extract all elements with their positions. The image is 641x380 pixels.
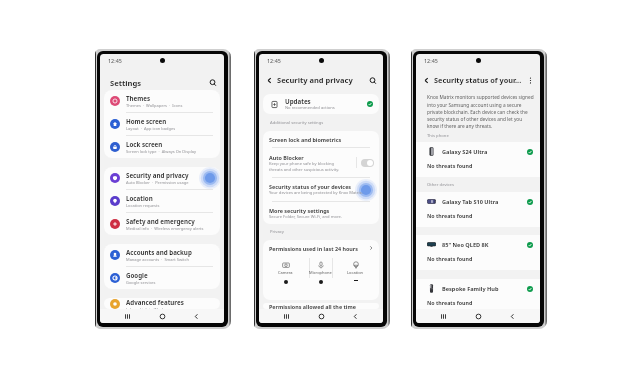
staticText: Settings [110, 78, 142, 88]
button[interactable]: Galaxy S24 Ultra [416, 142, 540, 177]
staticText: Other devices [427, 182, 454, 188]
button[interactable]: Back [421, 75, 432, 86]
button[interactable]: Home [315, 310, 328, 323]
button[interactable]: Permissions used in last 24 hours [263, 240, 379, 256]
staticText: Secure Folder, Secure Wi-Fi, and more. [269, 214, 342, 220]
staticText: Safety and emergency [126, 217, 195, 225]
button[interactable]: Microphone [309, 256, 332, 284]
staticText: Keep your phone safe by blocking threats… [269, 161, 340, 172]
staticText: Permissions used in last 24 hours [269, 245, 368, 252]
staticText: Medical info · Wireless emergency alerts [126, 226, 204, 231]
staticText: No recommended actions [285, 105, 335, 111]
staticText: More security settings [269, 207, 330, 214]
staticText: Security and privacy [126, 171, 189, 179]
button[interactable]: Screen lock and biometrics [263, 131, 379, 147]
button[interactable]: Search [367, 75, 378, 86]
staticText: Google [126, 271, 148, 279]
button[interactable]: More security settings [263, 202, 379, 224]
staticText: Advanced features [126, 298, 184, 306]
staticText: Your devices are being protected by Knox… [269, 190, 363, 196]
button[interactable]: Auto Blocker [263, 148, 379, 177]
staticText: Knox Matrix monitors supported devices s… [427, 94, 534, 129]
button[interactable]: Back [506, 310, 519, 323]
staticText: Auto Blocker · Permission usage [126, 180, 189, 185]
button[interactable]: Recents [121, 310, 134, 323]
button[interactable]: Galaxy Tab S10 Ultra [416, 192, 540, 227]
staticText: Location [347, 270, 364, 275]
button[interactable]: Recents [437, 310, 450, 323]
button[interactable]: Camera [278, 256, 293, 284]
staticText: Permissions allowed all the time [269, 303, 356, 309]
staticText: Galaxy S24 Ultra [442, 148, 527, 156]
button[interactable]: Permissions allowed all the time [263, 303, 379, 309]
staticText: No threats found [427, 255, 473, 262]
staticText: 85" Neo QLED 8K [442, 241, 527, 249]
button[interactable]: Lock screen [104, 136, 220, 158]
staticText: Camera [278, 270, 293, 275]
staticText: Microphone [309, 270, 332, 275]
staticText: Lock screen [126, 140, 163, 148]
staticText: Security status of your devices [269, 183, 352, 190]
button[interactable]: Security and privacy [104, 167, 220, 190]
button[interactable]: Safety and emergency [104, 213, 220, 235]
staticText: Updates [285, 97, 311, 105]
button[interactable]: Accounts and backup [104, 244, 220, 267]
staticText: Layout · App icon badges [126, 126, 176, 131]
button[interactable]: Location [104, 190, 220, 213]
staticText: Auto Blocker [269, 154, 304, 161]
button[interactable]: Advanced features [104, 298, 220, 309]
staticText: No threats found [427, 212, 473, 219]
staticText: Galaxy Tab S10 Ultra [442, 198, 527, 206]
button[interactable]: Home [472, 310, 485, 323]
staticText: Screen lock and biometrics [269, 136, 342, 143]
staticText: Additional security settings [270, 120, 324, 126]
staticText: Privacy [270, 229, 284, 235]
staticText: Security and privacy [277, 75, 367, 85]
button[interactable]: Security status of your devices [263, 178, 379, 201]
staticText: This phone [427, 133, 449, 139]
button[interactable]: Home screen [104, 113, 220, 136]
button[interactable]: Home [156, 310, 169, 323]
staticText: Accounts and backup [126, 248, 192, 256]
staticText: No threats found [427, 299, 473, 306]
staticText: Bespoke Family Hub [442, 285, 527, 293]
button[interactable]: 85" Neo QLED 8K [416, 235, 540, 270]
button[interactable]: Back [190, 310, 203, 323]
staticText: Security status of your... [434, 75, 525, 85]
button[interactable]: More options [525, 75, 535, 85]
staticText: 12:45 [424, 57, 438, 64]
button[interactable]: Location [347, 256, 364, 281]
button[interactable]: Google [104, 267, 220, 289]
button[interactable]: Updates [263, 94, 379, 114]
button[interactable]: Themes [104, 90, 220, 113]
staticText: Location requests [126, 203, 160, 208]
staticText: 12:45 [267, 57, 281, 64]
staticText: Themes · Wallpapers · Icons [126, 103, 183, 108]
staticText: Home screen [126, 117, 167, 125]
staticText: Manage accounts · Smart Switch [126, 257, 189, 262]
button[interactable]: Search [207, 77, 219, 89]
button[interactable]: Back [264, 75, 275, 86]
staticText: Screen lock type · Always On Display [126, 149, 196, 154]
button[interactable]: Recents [280, 310, 293, 323]
staticText: Themes [126, 94, 151, 102]
button[interactable]: Bespoke Family Hub [416, 279, 540, 309]
staticText: Labs · Link to Windows [126, 307, 171, 309]
staticText: Location [126, 194, 153, 202]
button[interactable]: Auto Blocker toggle [361, 159, 374, 167]
staticText: 12:45 [108, 57, 122, 64]
button[interactable]: Back [349, 310, 362, 323]
staticText: Google services [126, 280, 156, 285]
staticText: No threats found [427, 162, 473, 169]
